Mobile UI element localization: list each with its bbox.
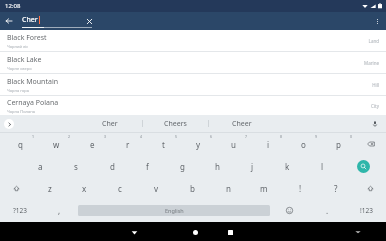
button[interactable]: o xyxy=(286,133,321,155)
staticText: Black Forest xyxy=(7,33,47,43)
button[interactable]: e xyxy=(74,133,110,155)
button[interactable]: v xyxy=(138,177,174,199)
staticText: Чорна Поляна xyxy=(7,109,35,114)
staticText: City xyxy=(371,103,379,109)
staticText: 2 xyxy=(68,134,71,139)
staticText: g xyxy=(180,161,185,172)
button[interactable]: Shift xyxy=(354,177,386,199)
button[interactable]: ?123 xyxy=(0,199,40,222)
button[interactable]: r xyxy=(110,133,146,155)
staticText: Black Mountain xyxy=(7,77,59,87)
button[interactable]: z xyxy=(32,177,67,199)
staticText: , xyxy=(58,205,61,216)
staticText: e xyxy=(90,139,95,150)
button[interactable]: x xyxy=(67,177,102,199)
staticText: ! xyxy=(299,183,302,194)
staticText: Cheers xyxy=(164,119,187,129)
staticText: 4 xyxy=(140,134,143,139)
button[interactable]: !123 xyxy=(346,199,386,222)
staticText: 9 xyxy=(315,134,318,139)
button[interactable]: Emoji xyxy=(270,199,308,222)
staticText: z xyxy=(48,183,52,194)
button[interactable]: u xyxy=(216,133,251,155)
button[interactable]: p xyxy=(321,133,356,155)
button[interactable]: d xyxy=(94,155,130,177)
button[interactable]: Black Forest xyxy=(0,30,386,51)
button[interactable]: Black Lake xyxy=(0,52,386,73)
button[interactable]: Collapse xyxy=(350,224,366,240)
button[interactable]: i xyxy=(251,133,286,155)
staticText: ?123 xyxy=(13,206,27,215)
button[interactable]: More options xyxy=(368,12,386,30)
button[interactable]: Voice input xyxy=(369,118,381,130)
staticText: ? xyxy=(334,183,338,194)
staticText: r xyxy=(126,139,130,150)
button[interactable]: q xyxy=(2,133,38,155)
button[interactable]: ! xyxy=(282,177,318,199)
staticText: x xyxy=(82,183,87,194)
button[interactable]: Backspace xyxy=(356,133,386,155)
button[interactable]: Recent apps xyxy=(222,224,238,240)
button[interactable]: Cher xyxy=(77,115,142,132)
button[interactable]: n xyxy=(210,177,246,199)
button[interactable]: Hide keyboard xyxy=(126,224,142,240)
staticText: w xyxy=(53,139,60,150)
button[interactable]: Cheer xyxy=(209,115,274,132)
staticText: 8 xyxy=(280,134,283,139)
staticText: u xyxy=(231,139,236,150)
staticText: 1 xyxy=(32,134,35,139)
staticText: Hill xyxy=(372,82,379,88)
staticText: . xyxy=(326,205,329,216)
staticText: v xyxy=(154,183,159,194)
staticText: Black Lake xyxy=(7,55,42,65)
staticText: t xyxy=(162,139,165,150)
button[interactable]: l xyxy=(305,155,340,177)
staticText: s xyxy=(74,161,78,172)
staticText: Cher xyxy=(102,119,118,129)
button[interactable]: m xyxy=(246,177,282,199)
staticText: k xyxy=(285,161,290,172)
staticText: 6 xyxy=(210,134,213,139)
staticText: f xyxy=(146,161,149,172)
staticText: 5 xyxy=(175,134,178,139)
button[interactable]: Home xyxy=(187,224,203,240)
staticText: Чорне озеро xyxy=(7,66,32,71)
button[interactable]: h xyxy=(200,155,235,177)
staticText: p xyxy=(336,139,341,150)
button[interactable]: c xyxy=(102,177,138,199)
button[interactable]: Cernaya Polana xyxy=(0,96,386,115)
button[interactable]: Navigate up xyxy=(0,12,18,30)
staticText: Cernaya Polana xyxy=(7,98,59,108)
staticText: j xyxy=(251,161,254,172)
button[interactable]: Clear search xyxy=(80,12,98,30)
staticText: 7 xyxy=(245,134,248,139)
staticText: y xyxy=(196,139,201,150)
button[interactable]: w xyxy=(38,133,74,155)
staticText: Чорний ліс xyxy=(7,44,29,49)
staticText: English xyxy=(165,207,184,214)
button[interactable]: j xyxy=(235,155,270,177)
staticText: n xyxy=(226,183,231,194)
button[interactable]: g xyxy=(165,155,200,177)
staticText: a xyxy=(38,161,43,172)
staticText: c xyxy=(118,183,122,194)
button[interactable]: a xyxy=(22,155,58,177)
button[interactable]: ? xyxy=(318,177,354,199)
button[interactable]: English xyxy=(78,205,270,216)
button[interactable]: Black Mountain xyxy=(0,74,386,95)
staticText: 0 xyxy=(350,134,353,139)
button[interactable]: b xyxy=(174,177,210,199)
button[interactable]: Comma xyxy=(40,199,78,222)
staticText: 3 xyxy=(104,134,107,139)
staticText: Cheer xyxy=(232,119,252,129)
button[interactable]: Search xyxy=(357,160,370,173)
button[interactable]: Cheers xyxy=(143,115,208,132)
button[interactable]: More suggestions xyxy=(4,119,14,129)
button[interactable]: y xyxy=(181,133,216,155)
button[interactable]: Shift xyxy=(0,177,32,199)
button[interactable]: t xyxy=(146,133,181,155)
button[interactable]: k xyxy=(270,155,305,177)
button[interactable]: s xyxy=(58,155,94,177)
button[interactable]: f xyxy=(130,155,165,177)
